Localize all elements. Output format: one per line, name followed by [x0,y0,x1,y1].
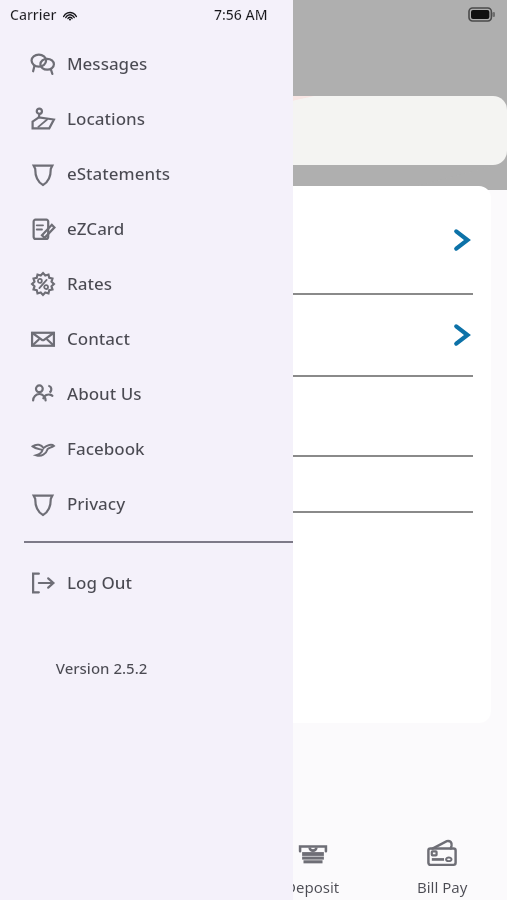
staticText: Bill Pay [417,877,468,897]
other: icon [30,436,56,462]
button[interactable]: icon [0,201,293,256]
button[interactable]: Deposit [248,808,377,900]
other: icon [30,271,56,297]
staticText: Log Out [67,571,132,594]
staticText: 7:56 AM [214,5,268,24]
button[interactable]: icon [0,256,293,311]
staticText: Deposit [285,877,340,897]
other: icon [30,491,56,517]
button[interactable] [0,295,491,375]
other: Log Out [30,570,56,596]
button[interactable]: icon [0,421,293,476]
staticText: Messages [67,52,148,75]
button[interactable] [0,186,491,293]
button[interactable] [0,457,491,511]
other: icon [30,326,56,352]
staticText: Facebook [67,437,145,460]
button[interactable]: icon [0,311,293,366]
staticText: Locations [67,107,145,130]
button[interactable]: icon [0,476,293,531]
other: Bill Pay [425,837,459,871]
other: icon [30,106,56,132]
button[interactable]: icon [0,366,293,421]
other: icon [30,381,56,407]
staticText: Contact [67,327,130,350]
button[interactable]: icon [0,36,293,91]
other: icon [30,51,56,77]
other: icon [30,161,56,187]
other: icon [30,216,56,242]
staticText: About Us [67,382,142,405]
other: Deposit [296,837,330,871]
staticText: Version 2.5.2 [0,658,203,678]
staticText: Rates [67,272,112,295]
staticText: Privacy [67,492,126,515]
staticText: eStatements [67,162,170,185]
button[interactable] [0,377,491,455]
button[interactable]: Bill Pay [377,808,507,900]
button[interactable]: icon [0,91,293,146]
button[interactable]: icon [0,146,293,201]
button[interactable]: Log Out [0,555,293,610]
staticText: Carrier [10,5,57,24]
staticText: eZCard [67,217,125,240]
